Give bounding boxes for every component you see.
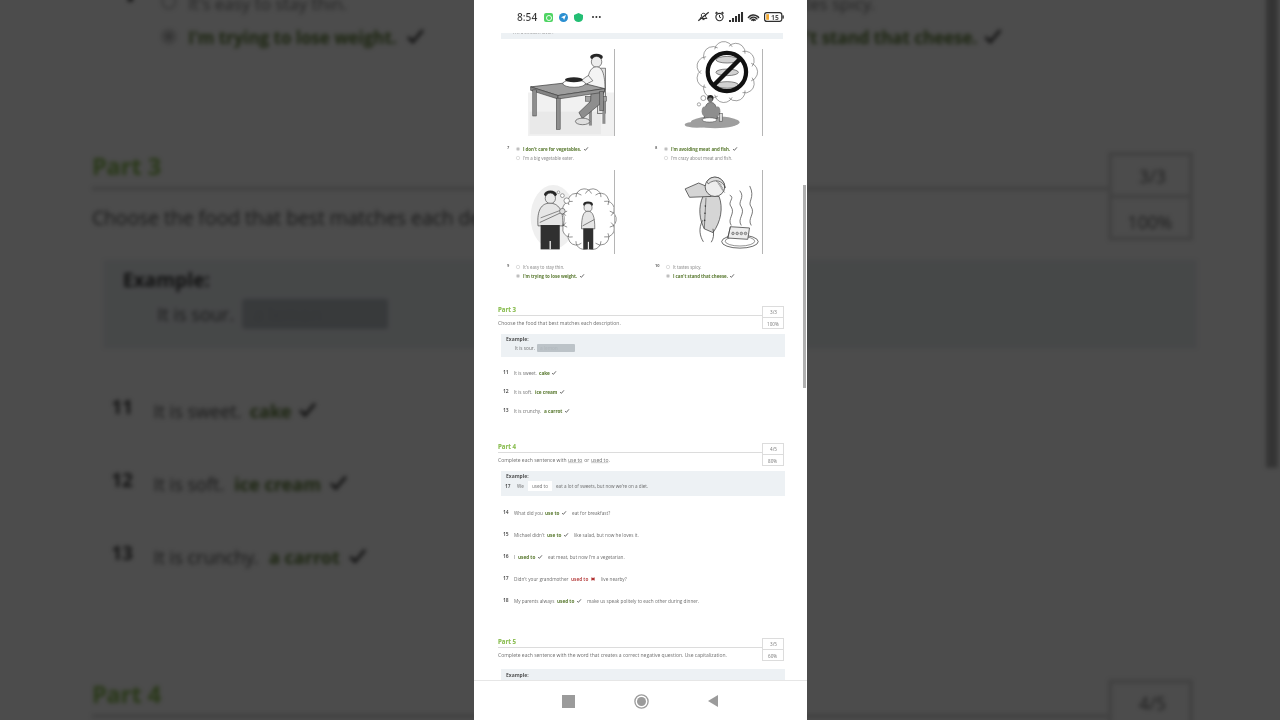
staticText: eat for breakfast? — [572, 510, 611, 516]
button[interactable]: 18 — [503, 597, 799, 604]
staticText: 15 — [771, 13, 779, 22]
staticText: cake — [250, 398, 292, 422]
staticText: 16 — [503, 553, 509, 560]
staticText: used to — [532, 483, 548, 489]
staticText: It is soft. — [153, 472, 227, 495]
staticText: It is sweet. — [153, 398, 242, 422]
staticText: It is sour. — [515, 345, 535, 351]
staticText: 18 — [503, 597, 509, 604]
staticText: 13 — [111, 541, 134, 568]
staticText: 100% — [1127, 210, 1174, 233]
button[interactable]: 9 — [88, 0, 658, 48]
button[interactable]: I can't stand that cheese. — [666, 273, 734, 279]
staticText: used to — [518, 554, 536, 560]
staticText: 4/5 — [1139, 691, 1166, 714]
staticText: It's easy to stay thin. — [523, 264, 565, 270]
staticText: used to — [557, 598, 575, 604]
button[interactable]: 16 — [503, 553, 799, 560]
staticText: It's easy to stay thin. — [188, 0, 350, 13]
staticText: or — [583, 457, 591, 464]
staticText: 3/5 — [770, 641, 777, 647]
staticText: used to — [591, 457, 609, 464]
button[interactable]: More notifications — [591, 10, 604, 24]
staticText: I'm a chicken lover. — [513, 33, 554, 35]
button[interactable]: Back — [699, 687, 727, 715]
staticText: Didn't your grandmother — [514, 576, 569, 582]
button[interactable]: 14 — [503, 509, 799, 516]
staticText: 12 — [111, 468, 134, 495]
button[interactable]: I'm avoiding meat and fish. — [664, 146, 737, 152]
staticText: Example: — [506, 336, 529, 343]
staticText: I can't stand that cheese. — [673, 273, 728, 279]
staticText: Part 3 — [498, 305, 516, 313]
staticText: eat a lot of sweets, but now we're on a … — [556, 483, 649, 489]
button[interactable]: It's easy to stay thin. — [161, 0, 350, 13]
button[interactable]: I'm a big vegetable eater. — [516, 155, 575, 161]
staticText: We — [517, 483, 524, 489]
button[interactable]: 15 — [503, 531, 799, 538]
button[interactable]: 13 — [111, 541, 1251, 568]
staticText: What did you — [514, 510, 543, 516]
staticText: I'm trying to lose weight. — [188, 25, 400, 48]
staticText: a carrot — [544, 408, 563, 414]
staticText: Part 5 — [498, 637, 516, 645]
button[interactable]: 10 — [645, 170, 794, 279]
button[interactable]: I don't care for vegetables. — [516, 146, 588, 152]
staticText: I'm avoiding meat and fish. — [671, 146, 731, 152]
staticText: cake — [539, 370, 550, 376]
button[interactable]: 11 — [503, 369, 799, 376]
staticText: 9 — [126, 0, 138, 6]
button[interactable]: 10 — [658, 0, 1231, 48]
button[interactable]: 7 — [497, 49, 645, 161]
staticText: Complete each sentence with — [498, 457, 568, 464]
staticText: 15 — [503, 531, 509, 538]
staticText: It tastes spicy. — [673, 264, 702, 270]
staticText: It is soft. — [514, 389, 533, 395]
button[interactable]: Home — [627, 687, 655, 715]
staticText: It is crunchy. — [153, 545, 261, 568]
staticText: 3/3 — [770, 309, 777, 315]
button[interactable]: 9 — [497, 170, 645, 279]
staticText: Part 3 — [92, 148, 161, 179]
staticText: 17 — [505, 483, 511, 490]
staticText: 8 — [655, 145, 658, 150]
button[interactable]: Recent apps — [554, 687, 582, 715]
button[interactable]: 8 — [645, 49, 794, 161]
button[interactable]: It tastes spicy. — [739, 0, 877, 13]
staticText: like salad, but now he loves it. — [574, 532, 639, 538]
staticText: I can't stand that cheese. — [766, 25, 977, 48]
staticText: Choose the food that best matches each d… — [498, 320, 621, 327]
button[interactable]: I'm trying to lose weight. — [516, 273, 584, 279]
staticText: make us speak politely to each other dur… — [587, 598, 700, 604]
staticText: 11 — [111, 395, 134, 422]
staticText: use to — [568, 457, 583, 464]
button[interactable]: 12 — [111, 468, 1251, 495]
staticText: eat meat, but now I'm a vegetarian. — [548, 554, 625, 560]
staticText: 8:54 — [517, 10, 538, 24]
staticText: use to — [547, 532, 562, 538]
staticText: 11 — [503, 369, 509, 376]
staticText: 3/3 — [1139, 164, 1166, 187]
staticText: Example: — [123, 268, 211, 294]
staticText: . — [609, 457, 611, 464]
staticText: a carrot — [269, 545, 342, 568]
button[interactable]: 12 — [503, 388, 799, 395]
button[interactable]: It tastes spicy. — [666, 264, 702, 270]
button[interactable]: I can't stand that cheese. — [739, 25, 1000, 48]
button[interactable]: It's easy to stay thin. — [516, 264, 565, 270]
staticText: 60% — [768, 653, 778, 659]
staticText: live nearby? — [601, 576, 627, 582]
staticText: 12 — [503, 388, 509, 395]
staticText: Part 4 — [498, 442, 516, 450]
button[interactable]: 17 — [503, 575, 799, 582]
staticText: ice cream — [234, 472, 323, 495]
staticText: Example: — [506, 473, 529, 480]
button[interactable]: I'm trying to lose weight. — [161, 25, 423, 48]
button[interactable]: I'm crazy about meat and fish. — [664, 155, 733, 161]
button[interactable]: 11 — [111, 395, 1251, 422]
staticText: I'm a big vegetable eater. — [523, 155, 575, 161]
button[interactable]: 13 — [503, 407, 799, 414]
